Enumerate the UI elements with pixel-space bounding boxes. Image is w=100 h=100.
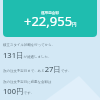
staticText: 次の注文予定日に必要な金額は [3,80,52,84]
staticText: 131日が経過しました。 [3,50,52,60]
staticText: +22,955円 [24,12,77,30]
staticText: 積立スタイル診断を行ってから、 [3,43,56,47]
button[interactable]: 運用益金額 [3,0,97,37]
staticText: 運用益金額 [41,11,59,16]
staticText: 次の注文予定日まで、あと27日です。 [3,64,72,74]
staticText: 100円です。 [3,86,35,96]
